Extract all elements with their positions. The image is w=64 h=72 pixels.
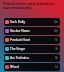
button[interactable]: Tech Daily bbox=[4, 18, 60, 26]
button[interactable]: Product Hunt bbox=[4, 36, 60, 44]
staticText: Hacker News bbox=[10, 29, 30, 33]
button[interactable]: Hacker News bbox=[4, 27, 60, 35]
button[interactable]: Ars Technica bbox=[4, 54, 60, 62]
staticText: Track news and websites automatically bbox=[3, 1, 58, 11]
staticText: 5m bbox=[54, 29, 59, 33]
staticText: Ars Technica bbox=[10, 56, 29, 60]
staticText: Tech Daily bbox=[10, 20, 26, 24]
staticText: Wired bbox=[10, 65, 19, 69]
button[interactable]: Wired bbox=[4, 63, 60, 71]
staticText: Product Hunt bbox=[10, 38, 31, 42]
staticText: 3h bbox=[55, 47, 59, 51]
staticText: 6h bbox=[55, 56, 59, 60]
staticText: The Verge bbox=[10, 47, 26, 51]
button[interactable]: The Verge bbox=[4, 45, 60, 53]
staticText: 1h bbox=[55, 38, 59, 42]
staticText: 2m bbox=[54, 20, 59, 24]
staticText: 1d bbox=[55, 65, 59, 69]
